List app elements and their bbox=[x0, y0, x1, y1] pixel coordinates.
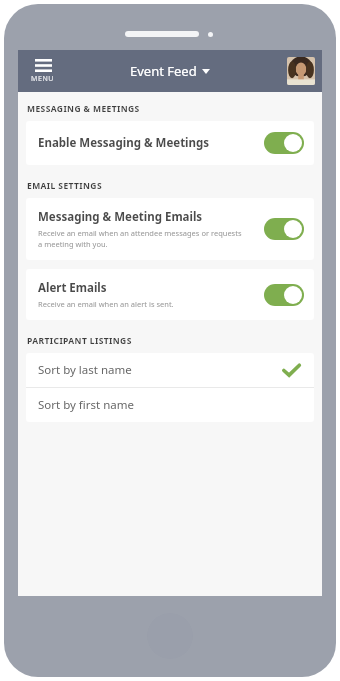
staticText: PARTICIPANT LISTINGS bbox=[27, 335, 132, 347]
button[interactable]: Profile bbox=[287, 57, 315, 85]
staticText: Messaging & Meeting Emails bbox=[38, 209, 203, 225]
staticText: Event Feed bbox=[130, 62, 197, 80]
button[interactable]: Alert Emails bbox=[26, 269, 314, 320]
staticText: EMAIL SETTINGS bbox=[27, 180, 103, 192]
staticText: MENU bbox=[31, 74, 55, 84]
button[interactable]: Toggle bbox=[264, 218, 304, 240]
staticText: Receive an email when an alert is sent. bbox=[38, 299, 174, 309]
button[interactable]: Menu bbox=[26, 56, 60, 87]
button[interactable]: Sort by last name bbox=[26, 353, 314, 387]
staticText: Receive an email when an attendee messag… bbox=[38, 228, 242, 249]
button[interactable]: Event Feed bbox=[124, 57, 216, 85]
staticText: MESSAGING & MEETINGS bbox=[27, 103, 140, 115]
button[interactable]: Sort by first name bbox=[26, 388, 314, 422]
staticText: Enable Messaging & Meetings bbox=[38, 135, 210, 151]
button[interactable]: Enable Messaging & Meetings bbox=[26, 121, 314, 165]
button[interactable]: Toggle bbox=[264, 132, 304, 154]
button[interactable]: Toggle bbox=[264, 284, 304, 306]
button[interactable]: Messaging & Meeting Emails bbox=[26, 198, 314, 260]
staticText: Sort by last name bbox=[38, 362, 283, 378]
staticText: Alert Emails bbox=[38, 280, 107, 296]
staticText: Sort by first name bbox=[38, 397, 300, 413]
